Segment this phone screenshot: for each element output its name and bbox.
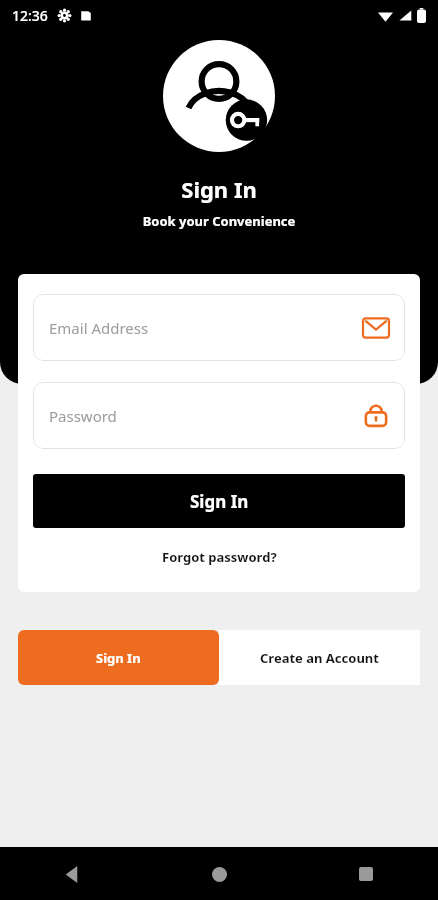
staticText: Sign In (190, 490, 249, 513)
button[interactable]: Home (197, 852, 241, 896)
staticText: Forgot password? (162, 548, 277, 566)
staticText: Password (49, 406, 363, 426)
button[interactable]: Forgot password? (33, 542, 405, 572)
button[interactable]: Sign In (33, 474, 405, 528)
button[interactable]: Back (50, 852, 94, 896)
staticText: Email Address (49, 318, 363, 338)
other: Email (363, 315, 389, 341)
staticText: Sign In (0, 174, 438, 204)
other: Password (363, 403, 389, 429)
staticText: Sign In (96, 649, 141, 667)
staticText: Book your Convenience (0, 212, 438, 230)
staticText: Create an Account (260, 649, 379, 667)
button[interactable]: Password (33, 382, 405, 449)
button[interactable]: Recent apps (344, 852, 388, 896)
staticText: 12:36 (12, 6, 48, 25)
button[interactable]: Create an Account (219, 630, 420, 685)
button[interactable]: Sign In (18, 630, 219, 685)
button[interactable]: Email Address (33, 294, 405, 361)
